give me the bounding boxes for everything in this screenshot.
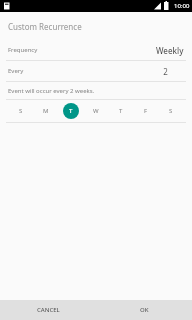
staticText: S (19, 107, 23, 115)
staticText: Every (8, 67, 24, 75)
staticText: Custom Recurrence (8, 21, 82, 32)
staticText: OK (140, 306, 149, 314)
button[interactable]: Day T (113, 103, 129, 119)
button[interactable]: Day W (88, 103, 104, 119)
button[interactable]: Every (0, 61, 192, 81)
staticText: 10:00 (174, 2, 190, 10)
staticText: S (169, 107, 173, 115)
staticText: CANCEL (37, 306, 60, 314)
staticText: T (69, 107, 73, 115)
button[interactable]: OK (96, 300, 192, 320)
staticText: T (119, 107, 123, 115)
button[interactable]: Day T (63, 103, 79, 119)
staticText: Frequency (8, 46, 38, 54)
button[interactable]: Frequency (0, 40, 192, 60)
staticText: F (144, 107, 148, 115)
button[interactable]: Day F (138, 103, 154, 119)
button[interactable]: Day S (13, 103, 29, 119)
staticText: W (93, 107, 99, 115)
staticText: Weekly (156, 45, 184, 56)
button[interactable]: Day M (38, 103, 54, 119)
button[interactable]: CANCEL (0, 300, 96, 320)
staticText: Event will occur every 2 weeks. (8, 87, 95, 95)
staticText: M (43, 107, 49, 115)
button[interactable]: Day S (163, 103, 179, 119)
staticText: 2 (163, 66, 168, 77)
